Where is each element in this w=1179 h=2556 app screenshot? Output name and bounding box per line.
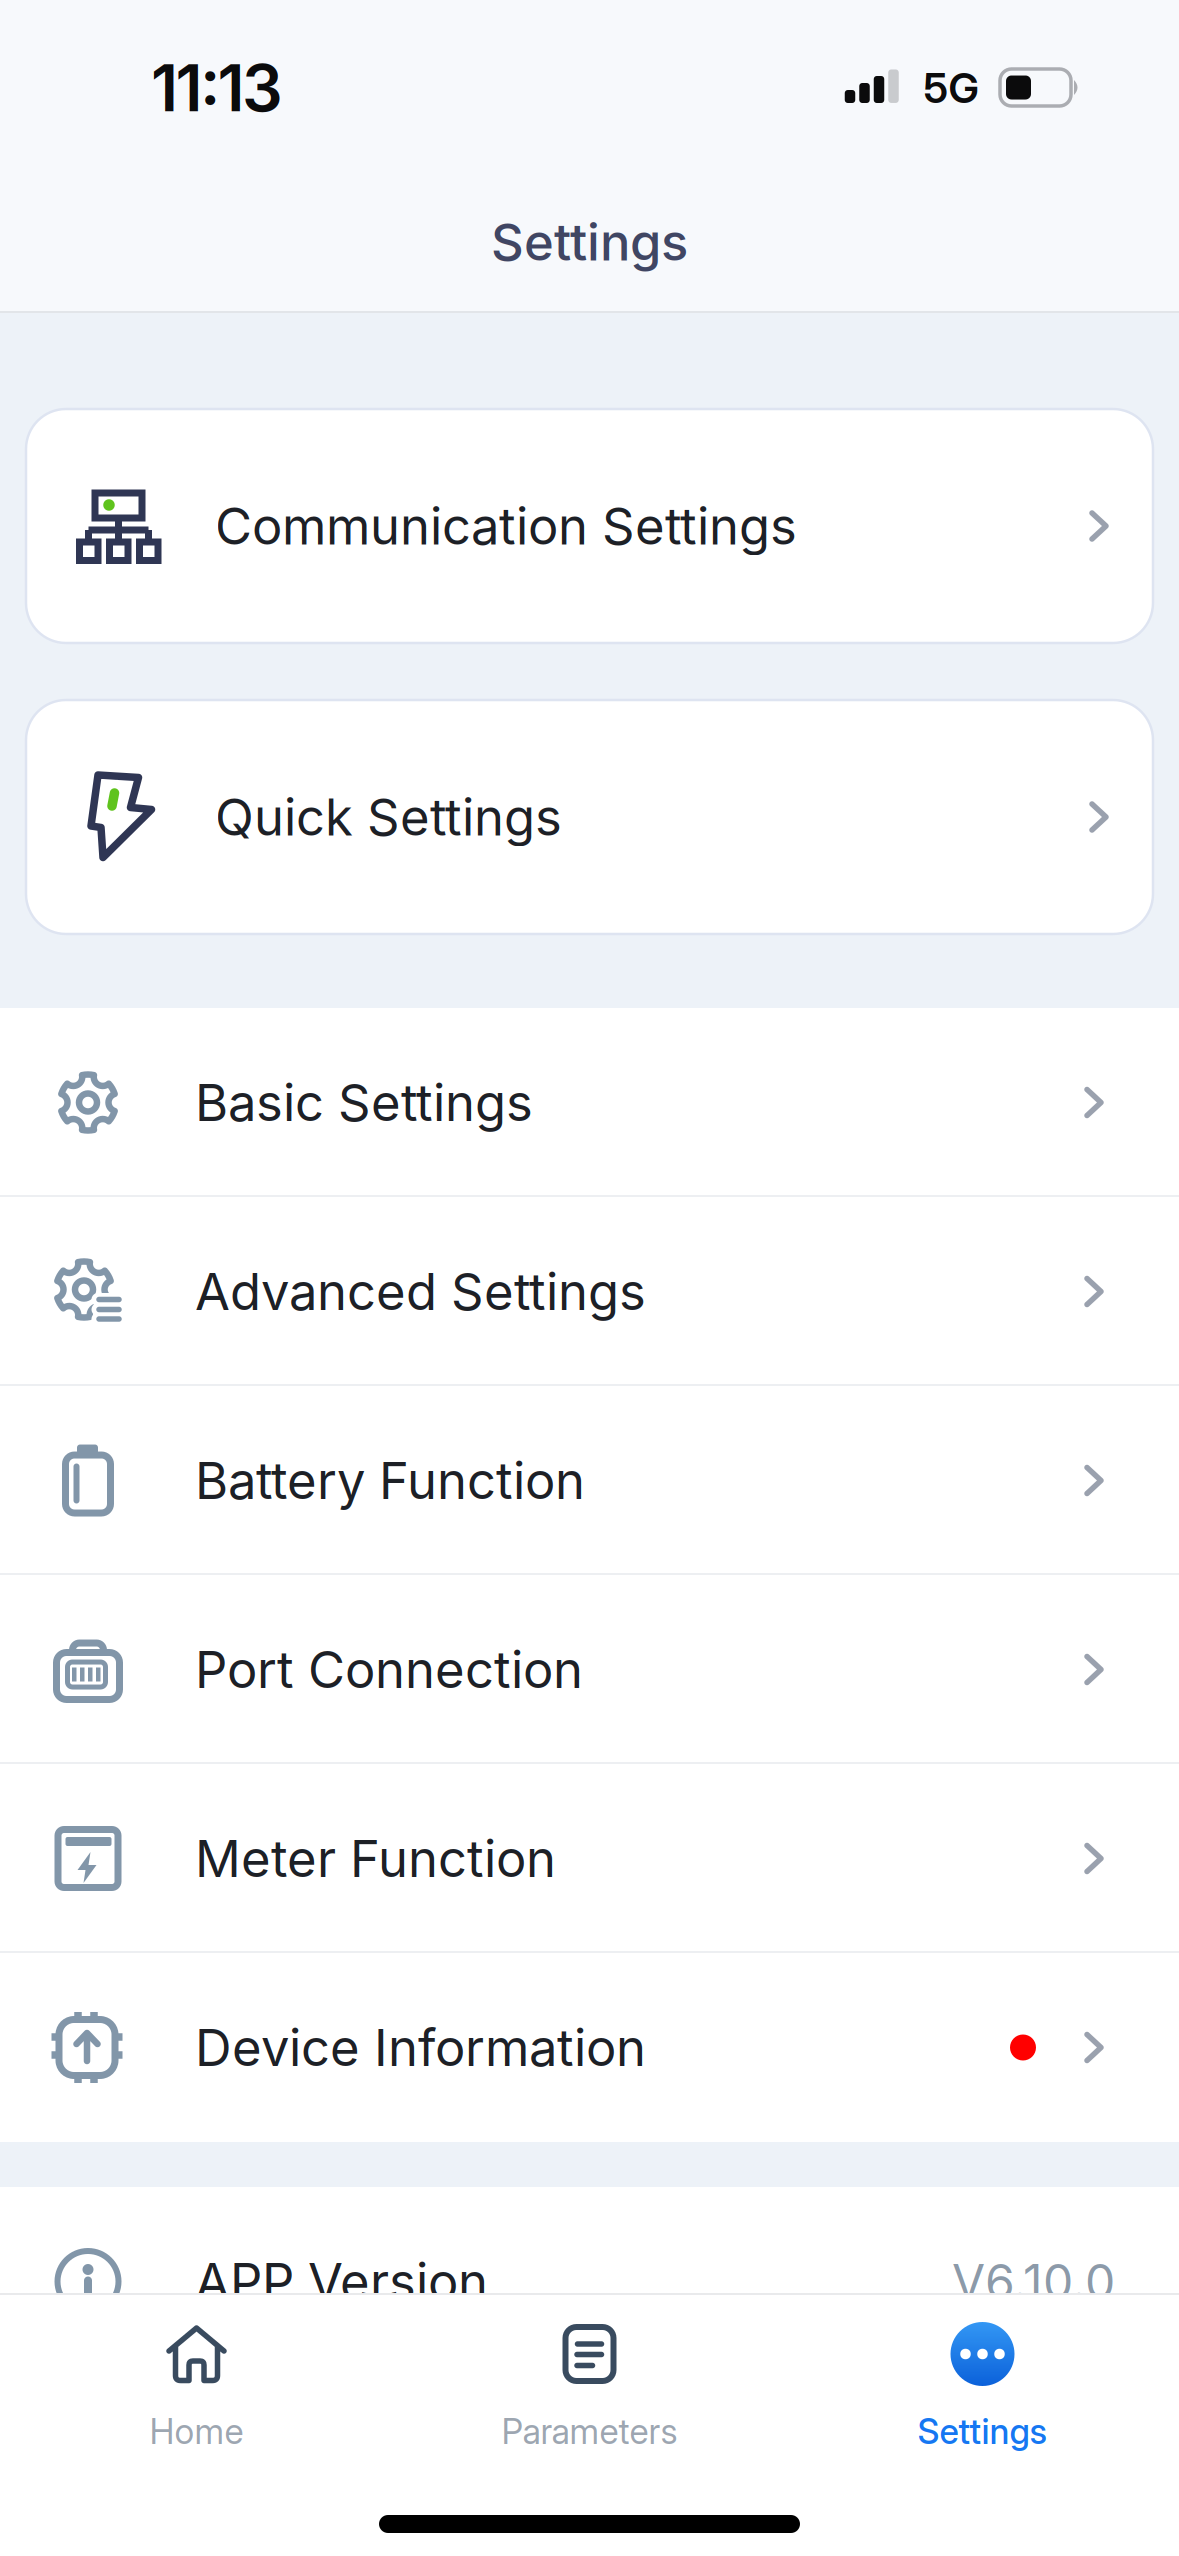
staticText: Settings — [491, 212, 688, 272]
button[interactable]: Battery Function — [0, 1386, 1179, 1575]
staticText: Meter Function — [195, 1829, 556, 1888]
button[interactable]: Meter Function — [0, 1764, 1179, 1953]
button[interactable]: Advanced Settings — [0, 1197, 1179, 1386]
button[interactable]: Communication Settings — [26, 409, 1153, 643]
staticText: Advanced Settings — [195, 1262, 646, 1321]
button[interactable]: APP Version — [0, 2187, 1179, 2376]
staticText: APP Version — [195, 2252, 488, 2311]
staticText: Port Connection — [195, 1640, 583, 1699]
button[interactable]: Quick Settings — [26, 700, 1153, 934]
staticText: Battery Function — [195, 1451, 585, 1510]
staticText: Device Information — [195, 2018, 646, 2077]
staticText: V6.10.0 — [952, 2253, 1115, 2310]
staticText: Quick Settings — [215, 787, 562, 847]
staticText: Parameters — [501, 2411, 677, 2452]
staticText: Home — [149, 2411, 243, 2452]
staticText: 11:13 — [151, 50, 283, 126]
button[interactable]: Device Information — [0, 1953, 1179, 2142]
staticText: Basic Settings — [195, 1073, 533, 1132]
staticText: 5G — [923, 64, 978, 112]
button[interactable]: Home — [0, 2323, 393, 2452]
staticText: Communication Settings — [215, 496, 797, 556]
button[interactable]: Port Connection — [0, 1575, 1179, 1764]
staticText: Settings — [917, 2411, 1047, 2452]
button[interactable]: Settings — [786, 2323, 1179, 2452]
button[interactable]: Parameters — [393, 2323, 786, 2452]
button[interactable]: Basic Settings — [0, 1008, 1179, 1197]
